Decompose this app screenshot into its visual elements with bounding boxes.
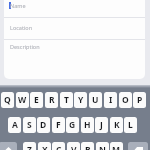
staticText: Description (10, 43, 40, 50)
staticText: J (100, 119, 103, 131)
staticText: G (69, 119, 76, 131)
button[interactable]: Backspace (128, 142, 148, 150)
button[interactable]: N (96, 142, 109, 150)
staticText: A (12, 119, 18, 131)
button[interactable]: Z (23, 142, 36, 150)
staticText: M (112, 144, 121, 150)
button[interactable]: W (16, 92, 29, 108)
button[interactable]: L (124, 117, 137, 133)
staticText: Y (78, 94, 84, 106)
staticText: P (137, 94, 143, 106)
staticText: Location (10, 24, 33, 31)
button[interactable]: Shift (0, 142, 17, 150)
button[interactable]: G (66, 117, 79, 133)
button[interactable]: Q (1, 92, 14, 108)
button[interactable]: A (8, 117, 21, 133)
button[interactable]: M (110, 142, 123, 150)
staticText: D (40, 119, 47, 131)
staticText: T (64, 94, 69, 106)
staticText: U (92, 94, 99, 106)
staticText: C (56, 144, 62, 150)
button[interactable]: T (60, 92, 73, 108)
button[interactable]: X (38, 142, 51, 150)
button[interactable]: K (110, 117, 123, 133)
button[interactable]: H (81, 117, 94, 133)
staticText: F (56, 119, 61, 131)
button[interactable]: B (81, 142, 94, 150)
staticText: L (128, 119, 133, 131)
button[interactable]: V (67, 142, 80, 150)
staticText: H (84, 119, 91, 131)
button[interactable]: O (119, 92, 132, 108)
button[interactable]: P (133, 92, 146, 108)
staticText: R (49, 94, 55, 106)
button[interactable]: F (52, 117, 65, 133)
button[interactable]: D (37, 117, 50, 133)
button[interactable]: C (52, 142, 65, 150)
button[interactable]: R (45, 92, 58, 108)
button[interactable]: I (104, 92, 117, 108)
staticText: Name (10, 2, 26, 9)
button[interactable]: E (30, 92, 43, 108)
staticText: B (85, 144, 91, 150)
staticText: N (99, 144, 106, 150)
staticText: W (18, 94, 27, 106)
staticText: Z (27, 144, 32, 150)
button[interactable]: J (95, 117, 108, 133)
button[interactable]: Location (4, 18, 145, 39)
staticText: Q (4, 94, 11, 106)
staticText: E (34, 94, 39, 106)
staticText: X (42, 144, 48, 150)
staticText: I (109, 94, 113, 106)
button[interactable]: S (23, 117, 36, 133)
button[interactable]: Name (4, 0, 145, 17)
staticText: O (122, 94, 129, 106)
staticText: K (114, 119, 120, 131)
staticText: S (27, 119, 32, 131)
button[interactable]: U (89, 92, 102, 108)
button[interactable]: Description (4, 40, 145, 79)
staticText: V (71, 144, 77, 150)
button[interactable]: Y (74, 92, 87, 108)
